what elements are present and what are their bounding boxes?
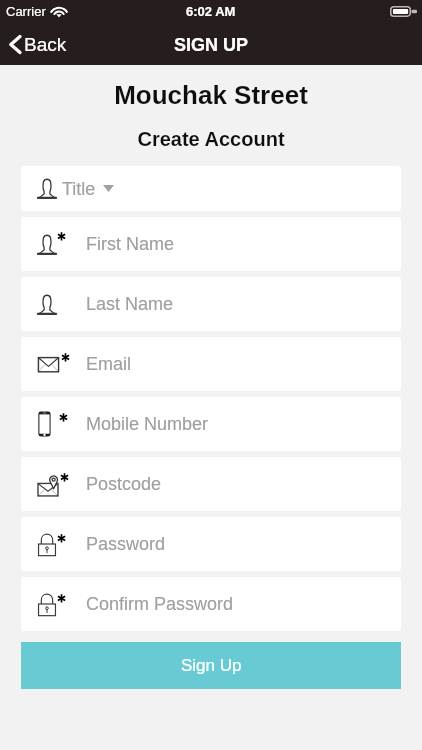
staticText: Password: [86, 534, 166, 554]
button[interactable]: Last Name: [21, 277, 401, 331]
button[interactable]: Back: [0, 29, 79, 60]
staticText: Postcode: [86, 474, 162, 494]
staticText: Mouchak Street: [0, 80, 422, 109]
button[interactable]: Title: [21, 166, 401, 211]
button[interactable]: Postcode: [21, 457, 401, 511]
staticText: First Name: [86, 234, 175, 254]
staticText: Sign Up: [181, 656, 242, 675]
button[interactable]: First Name: [21, 217, 401, 271]
staticText: Carrier: [6, 4, 46, 19]
staticText: Create Account: [0, 128, 422, 150]
staticText: Title: [62, 179, 96, 199]
button[interactable]: Confirm Password: [21, 577, 401, 631]
button[interactable]: Email: [21, 337, 401, 391]
button[interactable]: Mobile Number: [21, 397, 401, 451]
staticText: 6:02 AM: [186, 4, 236, 19]
staticText: Back: [24, 34, 67, 55]
staticText: Confirm Password: [86, 594, 234, 614]
button[interactable]: Password: [21, 517, 401, 571]
staticText: SIGN UP: [174, 35, 249, 55]
button[interactable]: Sign Up: [21, 642, 401, 689]
staticText: Last Name: [86, 294, 174, 314]
staticText: Mobile Number: [86, 414, 209, 434]
staticText: Email: [86, 354, 132, 374]
